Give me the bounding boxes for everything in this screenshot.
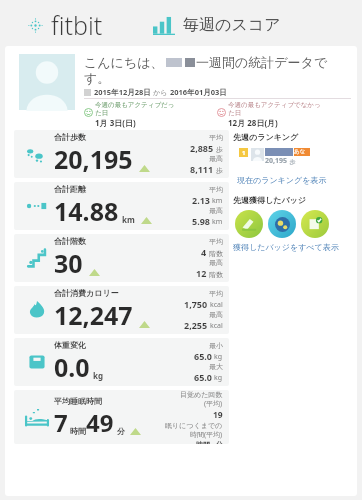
staticText: 合計階数 bbox=[54, 236, 86, 246]
staticText: 今週の最もアクティブだっ た日 bbox=[95, 101, 175, 117]
staticText: 0.0 bbox=[54, 350, 90, 384]
button[interactable]: 合計階数 bbox=[14, 234, 229, 282]
staticText: あなた bbox=[294, 148, 310, 156]
staticText: 平均 bbox=[209, 185, 223, 194]
staticText: km bbox=[212, 217, 223, 227]
button[interactable]: 合計消費カロリー bbox=[14, 286, 229, 334]
staticText: kg bbox=[93, 370, 104, 381]
staticText: 合計距離 bbox=[54, 184, 86, 194]
button[interactable]: バッジ bbox=[301, 210, 329, 238]
staticText: 平均 bbox=[209, 237, 223, 246]
staticText: 12 bbox=[196, 267, 207, 279]
staticText: 12,247 bbox=[54, 298, 133, 332]
staticText: 2.13 bbox=[192, 194, 210, 206]
staticText: 歩 bbox=[288, 158, 296, 166]
staticText: 20,195 bbox=[54, 142, 133, 176]
staticText: 歩 bbox=[216, 145, 223, 154]
staticText: す。 bbox=[84, 70, 111, 86]
staticText: 20,195 bbox=[265, 156, 288, 166]
button[interactable]: 合計距離 bbox=[14, 182, 229, 230]
staticText: 1,750 bbox=[184, 298, 208, 310]
staticText: 今週の最もアクティブでなかっ た日 bbox=[228, 101, 321, 117]
staticText: 時間 bbox=[196, 440, 210, 444]
staticText: 平均睡眠時間 bbox=[54, 396, 102, 406]
staticText: 最高 bbox=[209, 258, 223, 267]
staticText: 最小 bbox=[209, 341, 223, 350]
button[interactable]: バッジ bbox=[235, 210, 263, 238]
staticText: から bbox=[153, 88, 168, 97]
staticText: 時間(平均) bbox=[190, 430, 223, 440]
staticText: 平均 bbox=[209, 133, 223, 142]
staticText: 1 bbox=[242, 149, 246, 157]
staticText: 30 bbox=[54, 246, 83, 280]
button[interactable]: 現在のランキングを表示 bbox=[233, 174, 327, 186]
staticText: 階数 bbox=[209, 249, 223, 258]
staticText: 65.0 bbox=[194, 350, 212, 362]
staticText: 眠りにつくまでの bbox=[165, 421, 223, 430]
staticText: こんにちは、 bbox=[84, 54, 164, 70]
staticText: 平均 bbox=[209, 289, 223, 298]
staticText: 時間 bbox=[70, 426, 86, 436]
staticText: km bbox=[122, 214, 135, 225]
staticText: 1月 3日(日) bbox=[95, 117, 136, 128]
staticText: 階数 bbox=[209, 270, 223, 279]
staticText: 2015年12月28日 bbox=[94, 87, 151, 97]
staticText: 4 bbox=[201, 246, 207, 258]
staticText: 65.0 bbox=[194, 371, 212, 383]
staticText: 最高 bbox=[209, 206, 223, 215]
staticText: kg bbox=[214, 373, 223, 383]
button[interactable]: 獲得したバッジをすべて表示 bbox=[233, 241, 339, 253]
staticText: 獲得したバッジをすべて表示 bbox=[233, 242, 339, 252]
staticText: km bbox=[212, 196, 223, 206]
staticText: 現在のランキングを表示 bbox=[237, 175, 327, 185]
staticText: 2016年01月03日 bbox=[170, 87, 227, 97]
staticText: 分 bbox=[216, 440, 223, 444]
staticText: 19 bbox=[213, 409, 223, 421]
staticText: 2,885 bbox=[190, 142, 214, 154]
staticText: 12月 28日(月) bbox=[228, 117, 278, 128]
staticText: 目覚めた回数 bbox=[180, 390, 223, 399]
button[interactable]: 体重変化 bbox=[14, 338, 229, 386]
staticText: kg bbox=[214, 352, 223, 362]
staticText: 5.98 bbox=[192, 215, 210, 227]
staticText: 49 bbox=[86, 406, 114, 439]
button[interactable]: バッジ bbox=[268, 210, 296, 238]
staticText: 分 bbox=[117, 426, 125, 436]
staticText: 歩 bbox=[216, 166, 223, 175]
staticText: 14.88 bbox=[54, 194, 119, 228]
staticText: 先週のランキング bbox=[233, 132, 299, 142]
button[interactable]: 合計歩数 bbox=[14, 130, 229, 178]
staticText: 8,111 bbox=[190, 163, 214, 175]
staticText: 最高 bbox=[209, 154, 223, 163]
staticText: fitbit bbox=[51, 8, 103, 42]
staticText: 最高 bbox=[209, 310, 223, 319]
staticText: 合計消費カロリー bbox=[54, 288, 119, 298]
staticText: 2,255 bbox=[184, 319, 208, 331]
staticText: kcal bbox=[210, 321, 223, 331]
staticText: kcal bbox=[210, 300, 223, 310]
staticText: 毎週のスコア bbox=[183, 15, 281, 35]
staticText: 先週獲得したバッジ bbox=[233, 195, 306, 205]
staticText: 体重変化 bbox=[54, 340, 86, 350]
staticText: 最大 bbox=[209, 362, 223, 371]
staticText: 一週間の統計データで bbox=[196, 54, 328, 70]
staticText: (平均) bbox=[204, 399, 223, 409]
staticText: 合計歩数 bbox=[54, 132, 86, 142]
staticText: 7 bbox=[54, 406, 68, 439]
button[interactable]: 平均睡眠時間 bbox=[14, 390, 229, 444]
